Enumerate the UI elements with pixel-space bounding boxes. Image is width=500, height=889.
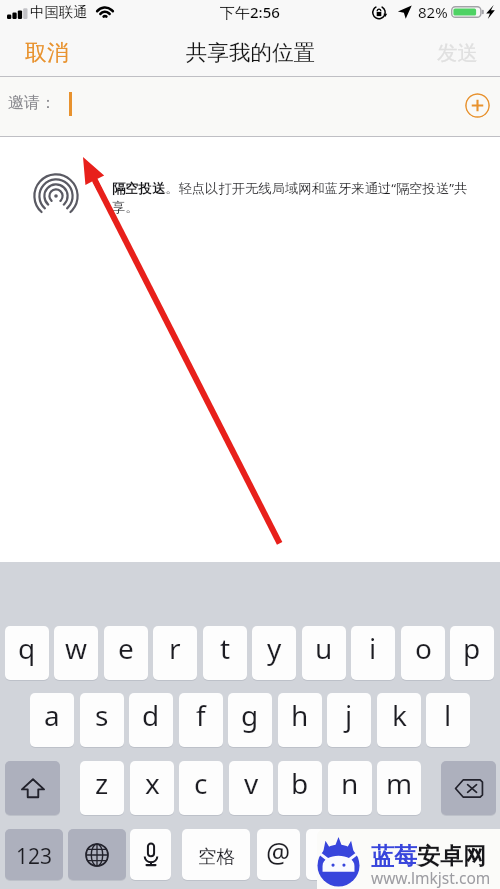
- button[interactable]: y: [252, 626, 296, 680]
- staticText: g: [241, 696, 259, 734]
- staticText: 发送: [437, 40, 478, 66]
- button[interactable]: u: [302, 626, 346, 680]
- staticText: n: [341, 764, 359, 802]
- button[interactable]: delete: [441, 761, 496, 815]
- staticText: c: [194, 764, 208, 802]
- button[interactable]: r: [153, 626, 197, 680]
- button[interactable]: 发送: [424, 28, 491, 77]
- staticText: 邀请：: [8, 93, 56, 113]
- staticText: t: [220, 629, 231, 667]
- staticText: m: [386, 764, 413, 802]
- button[interactable]: z: [80, 761, 124, 815]
- button[interactable]: f: [179, 693, 223, 747]
- staticText: v: [244, 764, 259, 802]
- staticText: x: [145, 764, 160, 802]
- staticText: k: [392, 696, 407, 734]
- staticText: www.lmkjst.com: [371, 867, 491, 888]
- staticText: 安卓网: [417, 842, 486, 871]
- button[interactable]: e: [104, 626, 148, 680]
- staticText: i: [369, 629, 377, 667]
- staticText: 隔空投送。轻点以打开无线局域网和蓝牙来通过“隔空投送”共 享。: [112, 179, 468, 216]
- staticText: e: [118, 629, 134, 667]
- button[interactable]: 换行: [306, 829, 390, 880]
- button[interactable]: j: [327, 693, 371, 747]
- button[interactable]: 空格: [182, 829, 250, 880]
- button[interactable]: k: [377, 693, 421, 747]
- staticText: y: [267, 629, 282, 667]
- staticText: 空格: [198, 845, 235, 868]
- staticText: b: [291, 764, 309, 802]
- staticText: s: [95, 696, 109, 734]
- button[interactable]: m: [377, 761, 421, 815]
- staticText: 蓝莓: [371, 842, 417, 871]
- staticText: p: [463, 629, 481, 667]
- button[interactable]: g: [228, 693, 272, 747]
- button[interactable]: w: [54, 626, 98, 680]
- button[interactable]: t: [203, 626, 247, 680]
- button[interactable]: p: [450, 626, 494, 680]
- staticText: 82%: [418, 2, 448, 22]
- button[interactable]: h: [278, 693, 322, 747]
- staticText: @: [266, 834, 291, 871]
- button[interactable]: q: [5, 626, 49, 680]
- staticText: h: [291, 696, 309, 734]
- staticText: 换行: [330, 845, 367, 868]
- staticText: a: [44, 696, 60, 734]
- button[interactable]: l: [426, 693, 470, 747]
- staticText: 123: [16, 842, 53, 871]
- staticText: z: [95, 764, 109, 802]
- button[interactable]: @: [257, 829, 300, 880]
- staticText: 取消: [25, 39, 69, 67]
- button[interactable]: o: [401, 626, 445, 680]
- button[interactable]: switch keyboard: [68, 829, 126, 880]
- button[interactable]: Add contact: [465, 93, 490, 118]
- staticText: q: [18, 629, 36, 667]
- staticText: f: [196, 696, 206, 734]
- button[interactable]: c: [179, 761, 223, 815]
- button[interactable]: 取消: [11, 28, 83, 77]
- button[interactable]: s: [80, 693, 124, 747]
- button[interactable]: 123: [5, 829, 63, 880]
- staticText: 中国联通: [30, 3, 88, 21]
- button[interactable]: d: [129, 693, 173, 747]
- button[interactable]: voice input: [130, 829, 171, 880]
- button[interactable]: i: [351, 626, 395, 680]
- staticText: w: [65, 629, 88, 667]
- button[interactable]: v: [229, 761, 273, 815]
- staticText: u: [315, 629, 333, 667]
- staticText: d: [142, 696, 160, 734]
- staticText: l: [444, 696, 452, 734]
- button[interactable]: n: [328, 761, 372, 815]
- staticText: j: [345, 696, 353, 734]
- staticText: 下午2:56: [220, 2, 280, 22]
- button[interactable]: a: [30, 693, 74, 747]
- staticText: r: [169, 629, 181, 667]
- button[interactable]: shift: [5, 761, 60, 815]
- staticText: o: [415, 629, 432, 667]
- button[interactable]: b: [278, 761, 322, 815]
- button[interactable]: x: [130, 761, 174, 815]
- staticText: 共享我的位置: [186, 39, 315, 66]
